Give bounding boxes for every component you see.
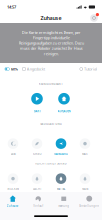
button[interactable]: START [24, 93, 50, 113]
button[interactable]: MAX [73, 138, 97, 156]
staticText: REINIGUNGSART [39, 82, 63, 86]
button[interactable]: STANDARD [49, 138, 73, 156]
staticText: 14:57 [7, 4, 16, 10]
button[interactable]: LEICHT [25, 173, 49, 191]
button[interactable]: TURBO [25, 138, 49, 156]
staticText: Die Karte ermöglicht es Ihnen, per Finge… [18, 30, 83, 56]
staticText: MAX [82, 152, 88, 156]
button[interactable]: AUFLADEN [51, 93, 77, 113]
staticText: START [33, 109, 40, 113]
staticText: NASS [82, 187, 88, 191]
button[interactable]: Zuhause [0, 193, 25, 209]
staticText: Einstellungen [79, 204, 99, 208]
staticText: Zuhause [40, 14, 61, 22]
staticText: MITTEL [57, 187, 65, 191]
staticText: STANDARD [54, 152, 68, 156]
button[interactable]: NASS [73, 173, 97, 191]
staticText: 44% [10, 66, 17, 72]
button[interactable]: Benachrichtigungen [89, 13, 99, 23]
staticText: Wartung [58, 204, 69, 208]
staticText: FEUCHTIGKEITSGRAD [35, 162, 67, 165]
staticText: AUFLADEN [57, 109, 70, 113]
staticText: LEICHT [33, 187, 41, 191]
button[interactable]: MITTEL [49, 173, 73, 191]
staticText: Angedockt [27, 66, 45, 72]
staticText: Verlauf [33, 204, 43, 208]
button[interactable]: Verlauf [25, 193, 51, 209]
staticText: Tutorial [84, 66, 97, 72]
button[interactable]: Einstellungen [76, 193, 102, 209]
staticText: TURBO [32, 152, 41, 156]
staticText: Zuhause [7, 204, 19, 208]
staticText: TROCKEN [7, 187, 19, 191]
button[interactable]: Wartung [51, 193, 76, 209]
staticText: SAUGLEISTUNG [40, 122, 62, 126]
button[interactable]: LEISE [1, 138, 25, 156]
staticText: LEISE [10, 152, 15, 156]
button[interactable]: TROCKEN [1, 173, 25, 191]
